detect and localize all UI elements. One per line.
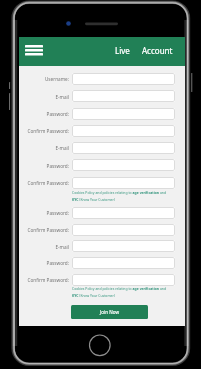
staticText: Password:	[46, 260, 69, 266]
button[interactable]: Join Now	[71, 305, 148, 319]
button[interactable]	[72, 207, 175, 219]
button[interactable]	[72, 274, 175, 286]
staticText: Live	[115, 45, 130, 56]
staticText: Username:	[44, 76, 69, 82]
button[interactable]	[72, 125, 175, 137]
staticText: Account	[142, 45, 173, 56]
staticText: Confirm Password:	[27, 227, 69, 233]
staticText: Cookies Policy and policies relating to …	[72, 286, 166, 291]
staticText: E-mail	[55, 244, 69, 250]
button[interactable]	[72, 90, 175, 102]
button[interactable]: Cookies Policy and policies relating to …	[72, 286, 168, 299]
staticText: E-mail	[55, 145, 69, 151]
staticText: Confirm Password:	[27, 277, 69, 283]
button[interactable]	[72, 142, 175, 154]
staticText: Confirm Password:	[27, 128, 69, 134]
staticText: Password:	[46, 111, 69, 117]
button[interactable]	[72, 240, 175, 252]
button[interactable]	[72, 257, 175, 269]
button[interactable]	[72, 73, 175, 85]
button[interactable]	[72, 224, 175, 236]
staticText: KYC (Know Your Customer)	[72, 293, 115, 298]
staticText: KYC (Know Your Customer)	[72, 197, 115, 202]
staticText: Cookies Policy and policies relating to …	[72, 190, 166, 195]
button[interactable]	[72, 108, 175, 120]
button[interactable]: Open navigation menu	[25, 45, 43, 55]
staticText: E-mail	[55, 94, 69, 100]
button[interactable]	[72, 159, 175, 171]
button[interactable]: Account	[139, 41, 176, 60]
staticText: Password:	[46, 163, 69, 169]
staticText: Password:	[46, 210, 69, 216]
staticText: Join Now	[100, 309, 120, 315]
button[interactable]	[72, 177, 175, 189]
staticText: Confirm Password:	[27, 180, 69, 186]
button[interactable]: Cookies Policy and policies relating to …	[72, 190, 168, 203]
button[interactable]: Live	[112, 41, 133, 60]
